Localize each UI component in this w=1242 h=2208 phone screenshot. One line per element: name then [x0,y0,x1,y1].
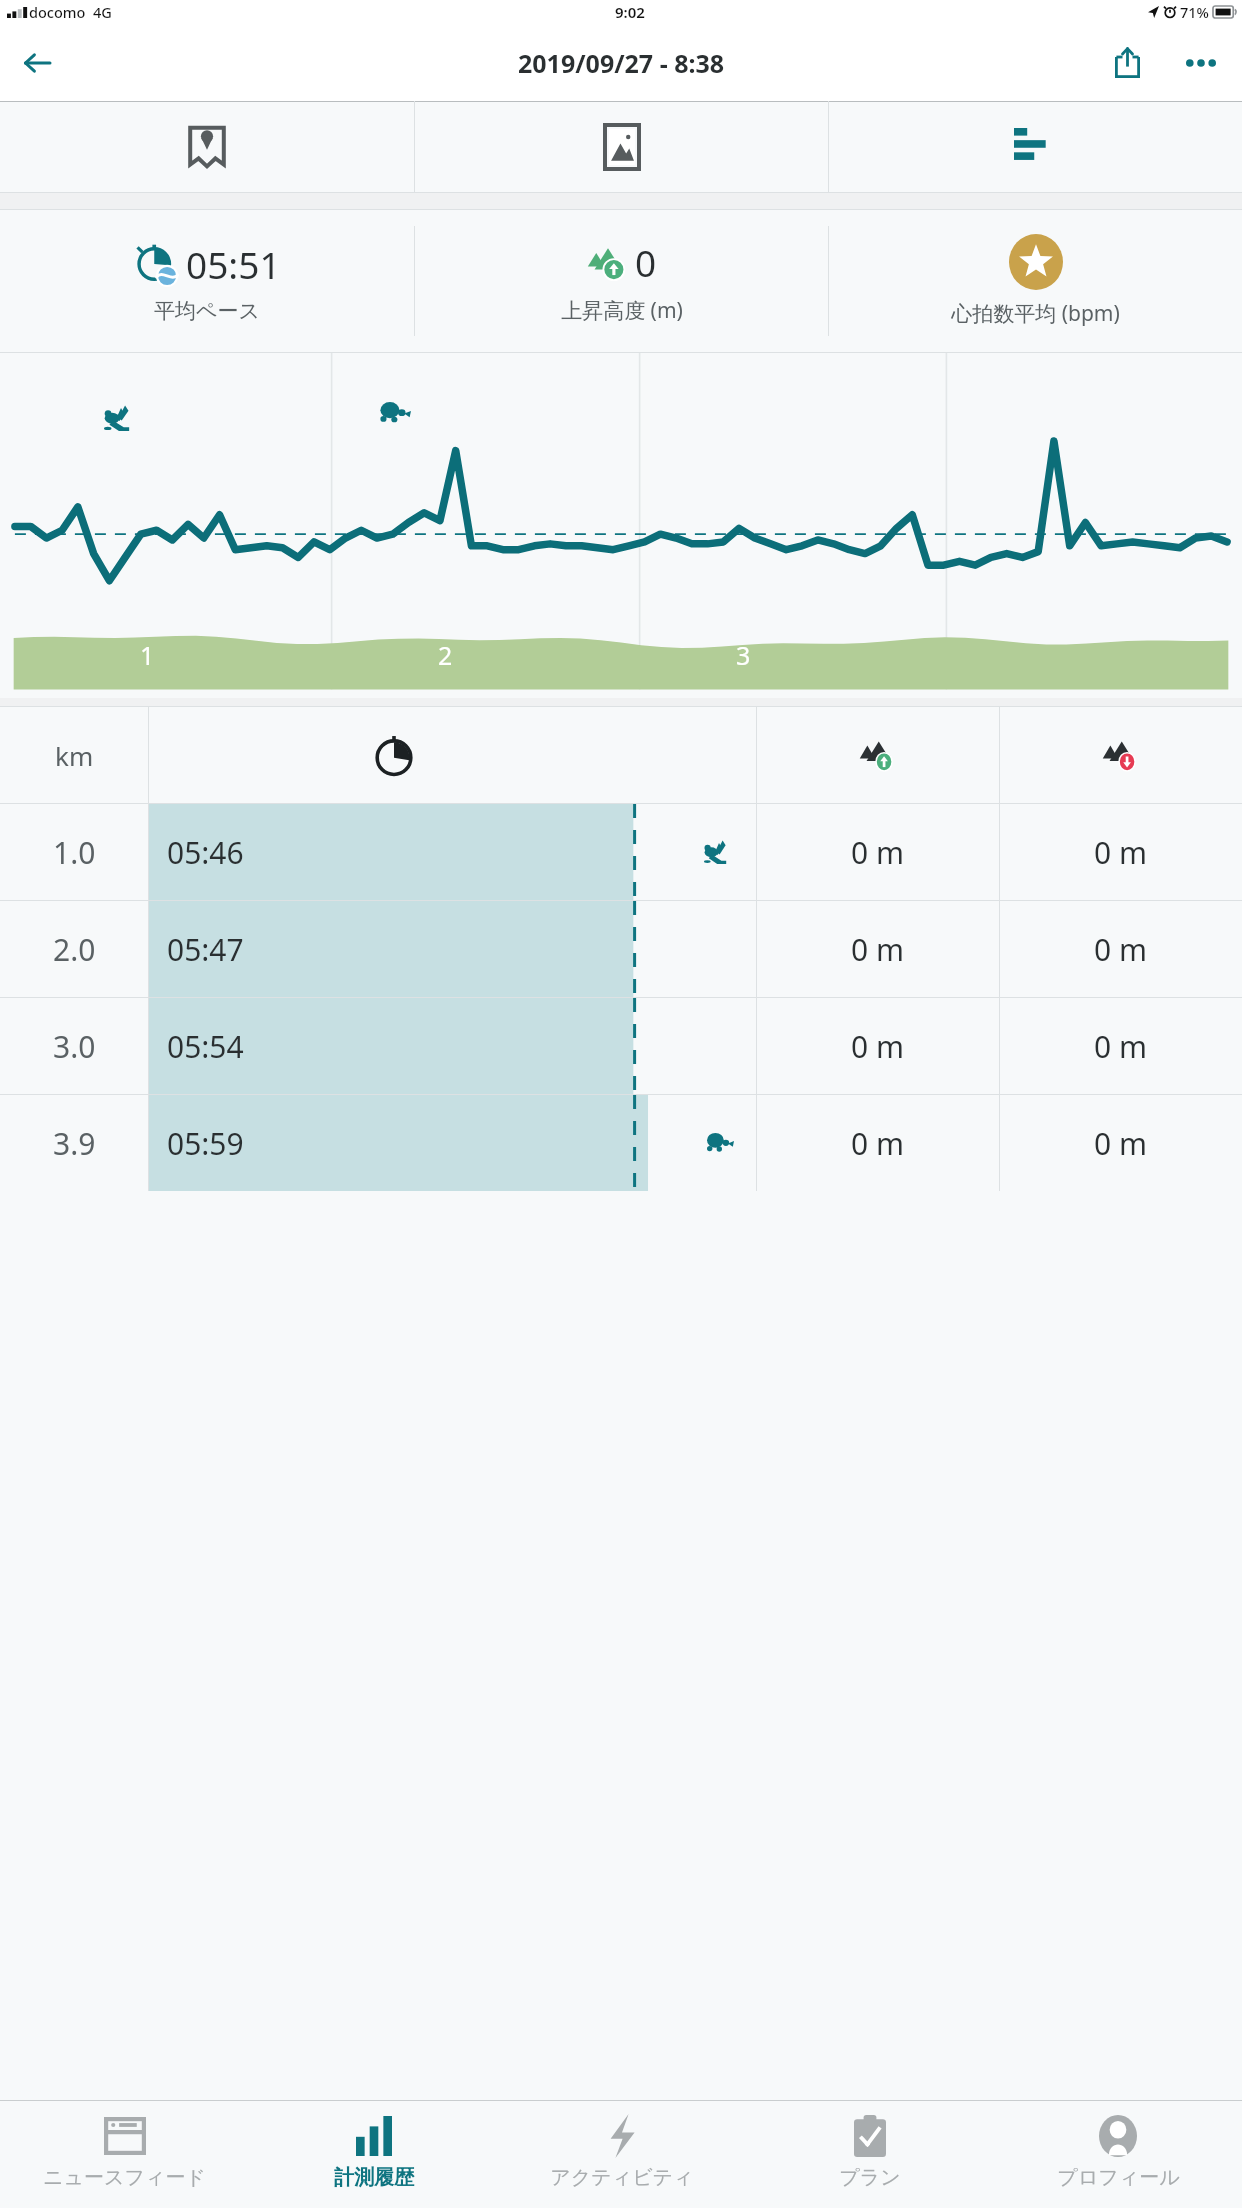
staticText: 計測履歴 [334,2165,414,2190]
staticText: 2 [438,638,453,672]
button[interactable]: 1.0 [0,804,1242,900]
button[interactable]: 心拍数平均 (bpm) [829,210,1242,352]
button[interactable]: 計測履歴 [249,2101,498,2208]
button[interactable]: More options [1172,34,1230,92]
staticText: docomo [29,2,86,22]
button[interactable]: 3.9 [0,1095,1242,1191]
staticText: 3.9 [53,1123,96,1164]
button[interactable]: アクティビティ [498,2101,746,2208]
staticText: 05:59 [167,1123,244,1164]
staticText: 05:46 [167,832,244,873]
button[interactable]: Splits [829,101,1242,192]
staticText: ニュースフィード [43,2165,206,2190]
button[interactable]: ニュースフィード [0,2101,249,2208]
staticText: 0 m [1094,832,1148,873]
button[interactable]: Photos [415,101,828,192]
staticText: 05:47 [167,929,244,970]
staticText: 0 m [1094,929,1148,970]
staticText: 0 m [851,1026,905,1067]
staticText: 9:02 [615,2,645,22]
button[interactable]: 05:51 [0,210,414,352]
button[interactable]: 0 [415,210,828,352]
staticText: 3 [736,638,751,672]
staticText: プラン [839,2165,901,2190]
staticText: 0 m [851,832,905,873]
staticText: 0 m [851,1123,905,1164]
staticText: 71% [1180,2,1209,22]
staticText: km [55,738,94,773]
button[interactable]: Back [10,36,64,90]
staticText: プロフィール [1057,2165,1180,2190]
button[interactable]: Map [0,101,414,192]
staticText: 平均ペース [154,298,260,324]
staticText: 05:51 [186,239,281,289]
staticText: 0 [635,237,657,287]
button[interactable]: 2.0 [0,901,1242,997]
button[interactable]: Share [1098,34,1156,92]
staticText: 心拍数平均 (bpm) [951,299,1120,328]
staticText: 0 m [851,929,905,970]
staticText: アクティビティ [550,2165,694,2190]
button[interactable]: プロフィール [994,2101,1242,2208]
staticText: 3.0 [53,1026,96,1067]
staticText: 05:54 [167,1026,244,1067]
button[interactable]: プラン [746,2101,994,2208]
staticText: 0 m [1094,1123,1148,1164]
button[interactable]: 3.0 [0,998,1242,1094]
staticText: 1 [140,638,155,672]
staticText: 4G [93,2,112,22]
staticText: 2.0 [53,929,96,970]
staticText: 1.0 [53,832,96,873]
staticText: 2019/09/27 - 8:38 [518,46,725,80]
staticText: 0 m [1094,1026,1148,1067]
staticText: 上昇高度 (m) [561,296,683,325]
